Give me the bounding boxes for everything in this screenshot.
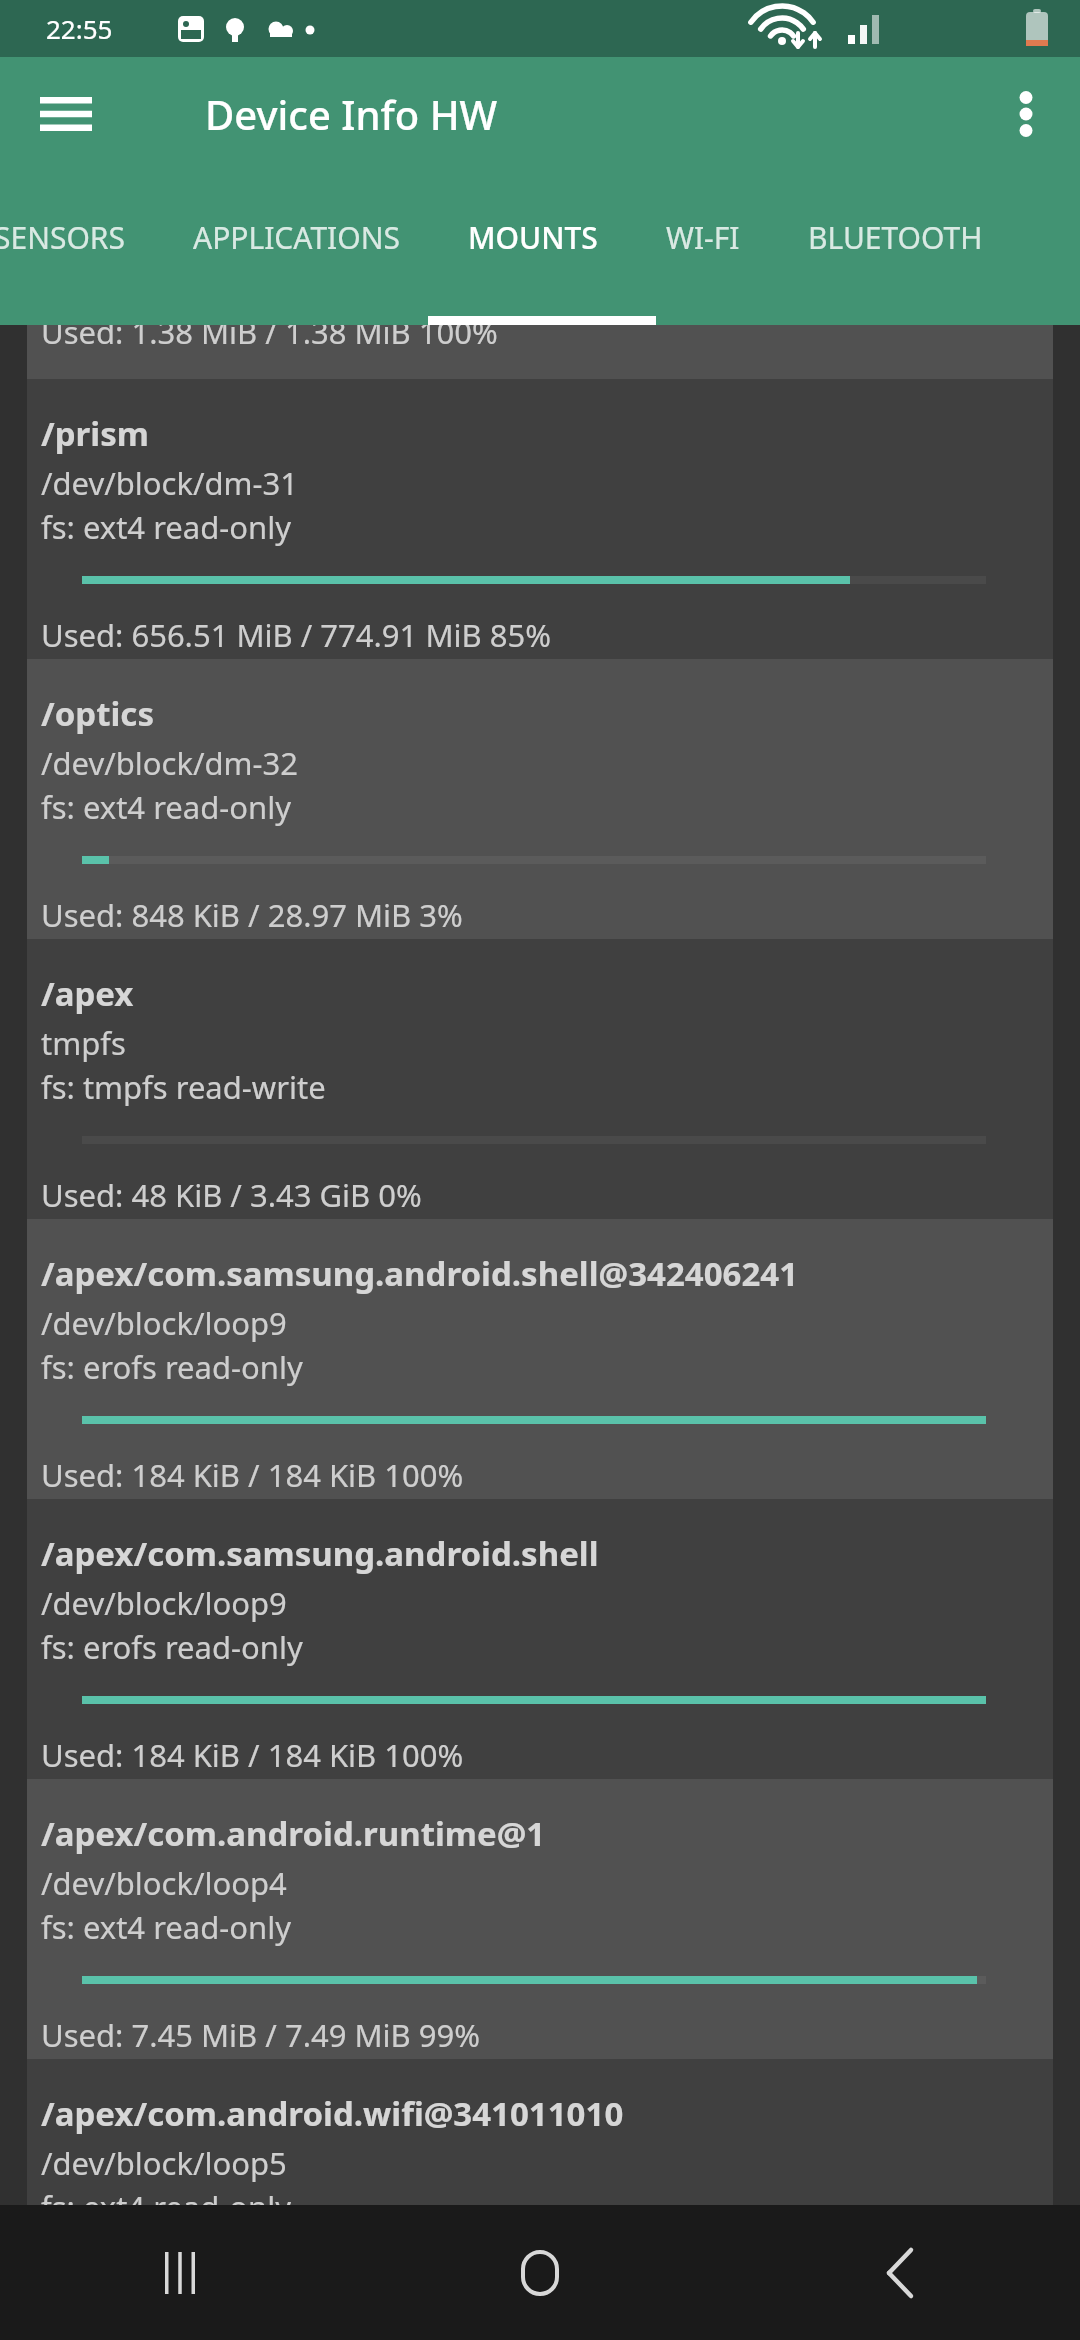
staticText: fs: erofs read-only [41, 1346, 303, 1388]
staticText: MOUNTS [468, 217, 598, 258]
staticText: fs: ext4 read-only [41, 2186, 291, 2205]
button[interactable]: /apex/com.android.runtime@1 [0, 1779, 1080, 2059]
staticText: /dev/block/loop5 [41, 2142, 287, 2184]
button[interactable]: APPLICATIONS [159, 170, 434, 315]
button[interactable]: MOUNTS [434, 170, 632, 315]
staticText: APPLICATIONS [193, 217, 400, 258]
staticText: /apex/com.samsung.android.shell [41, 1531, 599, 1576]
staticText: Used: 1.38 MiB / 1.38 MiB 100% [41, 325, 498, 353]
staticText: /dev/block/loop9 [41, 1302, 287, 1344]
button[interactable]: /apex [0, 939, 1080, 1219]
staticText: fs: ext4 read-only [41, 786, 291, 828]
staticText: /dev/block/dm-32 [41, 742, 299, 784]
staticText: fs: tmpfs read-write [41, 1066, 326, 1108]
staticText: Used: 184 KiB / 184 KiB 100% [41, 1454, 464, 1496]
button[interactable]: Back [720, 2205, 1080, 2340]
staticText: BLUETOOTH [808, 217, 983, 258]
button[interactable]: BLUETOOTH [774, 170, 1017, 315]
button[interactable]: Used: 1.38 MiB / 1.38 MiB 100% [0, 325, 1080, 379]
button[interactable]: Recent apps [0, 2205, 360, 2340]
staticText: /optics [41, 691, 154, 736]
staticText: /dev/block/loop9 [41, 1582, 287, 1624]
staticText: tmpfs [41, 1022, 126, 1064]
staticText: /apex/com.android.runtime@1 [41, 1811, 546, 1856]
button[interactable]: /optics [0, 659, 1080, 939]
button[interactable]: /apex/com.samsung.android.shell@34240624… [0, 1219, 1080, 1499]
staticText: fs: ext4 read-only [41, 506, 291, 548]
staticText: Used: 656.51 MiB / 774.91 MiB 85% [41, 614, 551, 656]
staticText: SENSORS [0, 217, 125, 258]
button[interactable]: SENSORS [0, 170, 159, 315]
staticText: Used: 48 KiB / 3.43 GiB 0% [41, 1174, 422, 1216]
staticText: fs: ext4 read-only [41, 1906, 291, 1948]
staticText: Used: 184 KiB / 184 KiB 100% [41, 1734, 464, 1776]
staticText: Device Info HW [205, 87, 498, 141]
staticText: /apex/com.android.wifi@341011010 [41, 2091, 624, 2136]
button[interactable]: /apex/com.samsung.android.shell [0, 1499, 1080, 1779]
button[interactable]: Open navigation drawer [26, 74, 106, 154]
staticText: Used: 7.45 MiB / 7.49 MiB 99% [41, 2014, 481, 2056]
staticText: fs: erofs read-only [41, 1626, 303, 1668]
staticText: /dev/block/loop4 [41, 1862, 287, 1904]
staticText: /dev/block/dm-31 [41, 462, 299, 504]
button[interactable]: WI-FI [632, 170, 774, 315]
button[interactable]: /prism [0, 379, 1080, 659]
staticText: WI-FI [666, 217, 740, 258]
staticText: 22:55 [46, 11, 113, 46]
staticText: Used: 848 KiB / 28.97 MiB 3% [41, 894, 463, 936]
button[interactable]: More options [990, 78, 1062, 150]
button[interactable]: /apex/com.android.wifi@341011010 [0, 2059, 1080, 2205]
staticText: /prism [41, 411, 149, 456]
button[interactable]: Home [360, 2205, 720, 2340]
staticText: /apex [41, 971, 134, 1016]
staticText: /apex/com.samsung.android.shell@34240624… [41, 1251, 799, 1296]
